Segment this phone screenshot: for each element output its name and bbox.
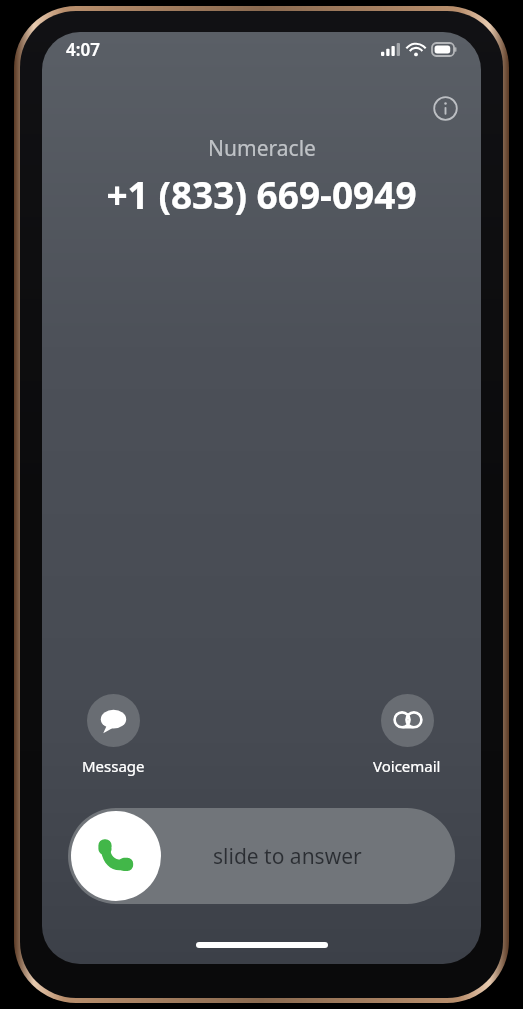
button[interactable]: Slide to answer bbox=[68, 808, 455, 904]
staticText: Voicemail bbox=[373, 756, 441, 776]
button[interactable]: Voicemail bbox=[369, 690, 445, 780]
button[interactable]: Call info bbox=[425, 88, 465, 128]
staticText: slide to answer bbox=[213, 842, 362, 871]
button[interactable]: Message bbox=[78, 690, 149, 780]
button[interactable]: Answer call bbox=[71, 811, 161, 901]
staticText: 4:07 bbox=[66, 38, 100, 61]
staticText: Message bbox=[82, 756, 145, 776]
staticText: +1 (833) 669-0949 bbox=[106, 169, 417, 219]
staticText: Numeracle bbox=[208, 134, 316, 163]
